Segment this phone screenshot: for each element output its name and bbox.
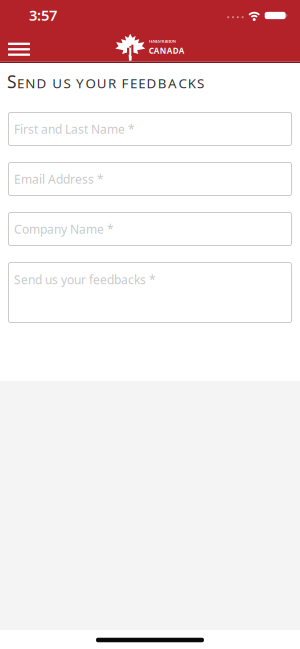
staticText: E [130, 74, 137, 92]
staticText: K [188, 74, 196, 92]
staticText: CANADA [149, 45, 185, 56]
staticText: First and Last Name * [14, 121, 135, 137]
staticText: D [37, 74, 47, 92]
staticText: U [97, 74, 107, 92]
staticText: O [85, 74, 95, 92]
staticText: Send us your feedbacks * [14, 271, 156, 287]
staticText: R [108, 74, 116, 92]
staticText: FENESTRATION [149, 38, 176, 44]
button[interactable]: Send us your feedbacks * [8, 262, 292, 323]
button[interactable]: Email Address * [8, 162, 292, 196]
button[interactable]: Company Name * [8, 212, 292, 246]
staticText: S [197, 74, 204, 92]
staticText: Y [76, 74, 84, 92]
staticText: E [138, 74, 145, 92]
staticText: 3:57 [29, 5, 57, 25]
button[interactable]: First and Last Name * [8, 112, 292, 146]
staticText: N [25, 74, 35, 92]
button[interactable]: Fenestration Canada [115, 34, 185, 61]
staticText: C [178, 74, 186, 92]
button[interactable]: Menu [0, 43, 30, 56]
staticText: A [168, 74, 177, 92]
staticText: E [17, 74, 24, 92]
staticText: S [7, 70, 17, 93]
staticText: U [52, 74, 62, 92]
staticText: S [63, 74, 70, 92]
staticText: Email Address * [14, 171, 104, 187]
staticText: Company Name * [14, 221, 114, 237]
staticText: D [146, 74, 156, 92]
staticText: F [122, 74, 129, 92]
staticText: B [158, 74, 167, 92]
